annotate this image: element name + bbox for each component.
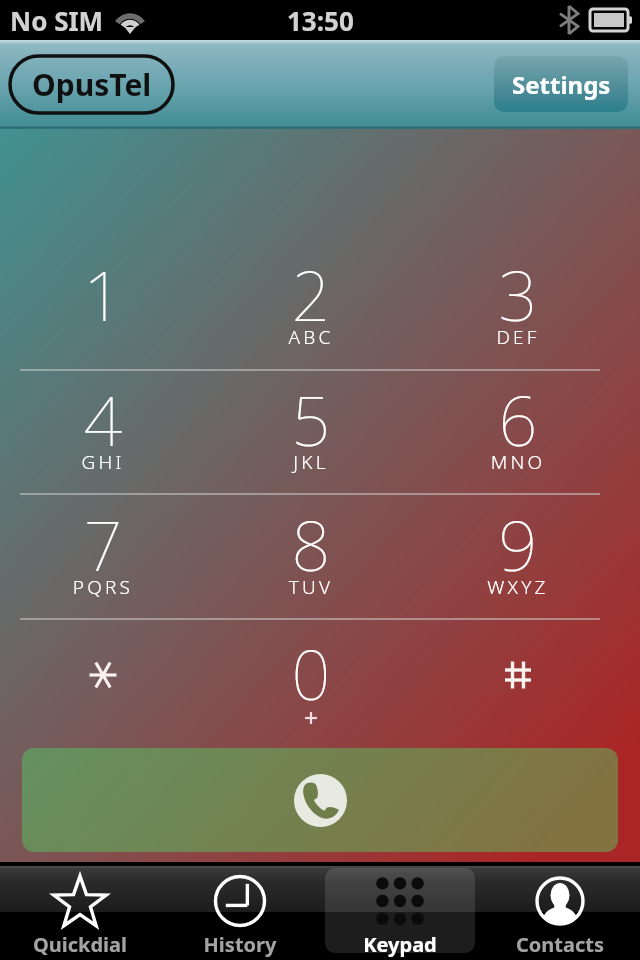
button[interactable]: 6	[438, 366, 598, 486]
button[interactable]: 7	[23, 491, 183, 611]
button[interactable]: 0	[231, 624, 391, 754]
button[interactable]: 4	[23, 366, 183, 486]
staticText: History	[160, 931, 320, 958]
staticText: DEF	[438, 324, 598, 350]
button[interactable]: Hash	[438, 620, 598, 730]
button[interactable]: 8	[231, 491, 391, 611]
staticText: No SIM	[10, 3, 104, 38]
staticText: 8	[231, 498, 391, 591]
staticText: 3	[438, 248, 598, 341]
button[interactable]: Contacts	[480, 862, 640, 960]
button[interactable]: Star	[23, 620, 183, 730]
staticText: 7	[23, 498, 183, 591]
staticText: Settings	[512, 68, 611, 101]
staticText: PQRS	[23, 574, 183, 600]
button[interactable]: 3	[438, 241, 598, 361]
staticText: GHI	[23, 449, 183, 475]
button[interactable]: 1	[23, 241, 183, 361]
staticText: 4	[23, 373, 183, 466]
button[interactable]: 9	[438, 491, 598, 611]
staticText: MNO	[438, 449, 598, 475]
staticText: 2	[231, 248, 391, 341]
staticText: WXYZ	[438, 574, 598, 600]
staticText: 5	[231, 373, 391, 466]
staticText: ABC	[231, 324, 391, 350]
button[interactable]: Quickdial	[0, 862, 160, 960]
staticText: 6	[438, 373, 598, 466]
staticText: JKL	[231, 449, 391, 475]
staticText: 13:50	[287, 3, 354, 38]
button[interactable]: 2	[231, 241, 391, 361]
staticText: TUV	[231, 574, 391, 600]
staticText: OpusTel	[32, 64, 152, 105]
staticText: Keypad	[320, 931, 480, 958]
staticText: Quickdial	[0, 931, 160, 958]
staticText: Contacts	[480, 931, 640, 958]
button[interactable]: Call	[22, 748, 618, 852]
button[interactable]: Settings	[494, 56, 628, 112]
button[interactable]: OpusTel	[10, 56, 173, 113]
staticText: 1	[23, 248, 183, 341]
button[interactable]: Keypad	[320, 862, 480, 960]
button[interactable]: 5	[231, 366, 391, 486]
staticText: 9	[438, 498, 598, 591]
staticText: 0	[231, 627, 391, 720]
button[interactable]: History	[160, 862, 320, 960]
